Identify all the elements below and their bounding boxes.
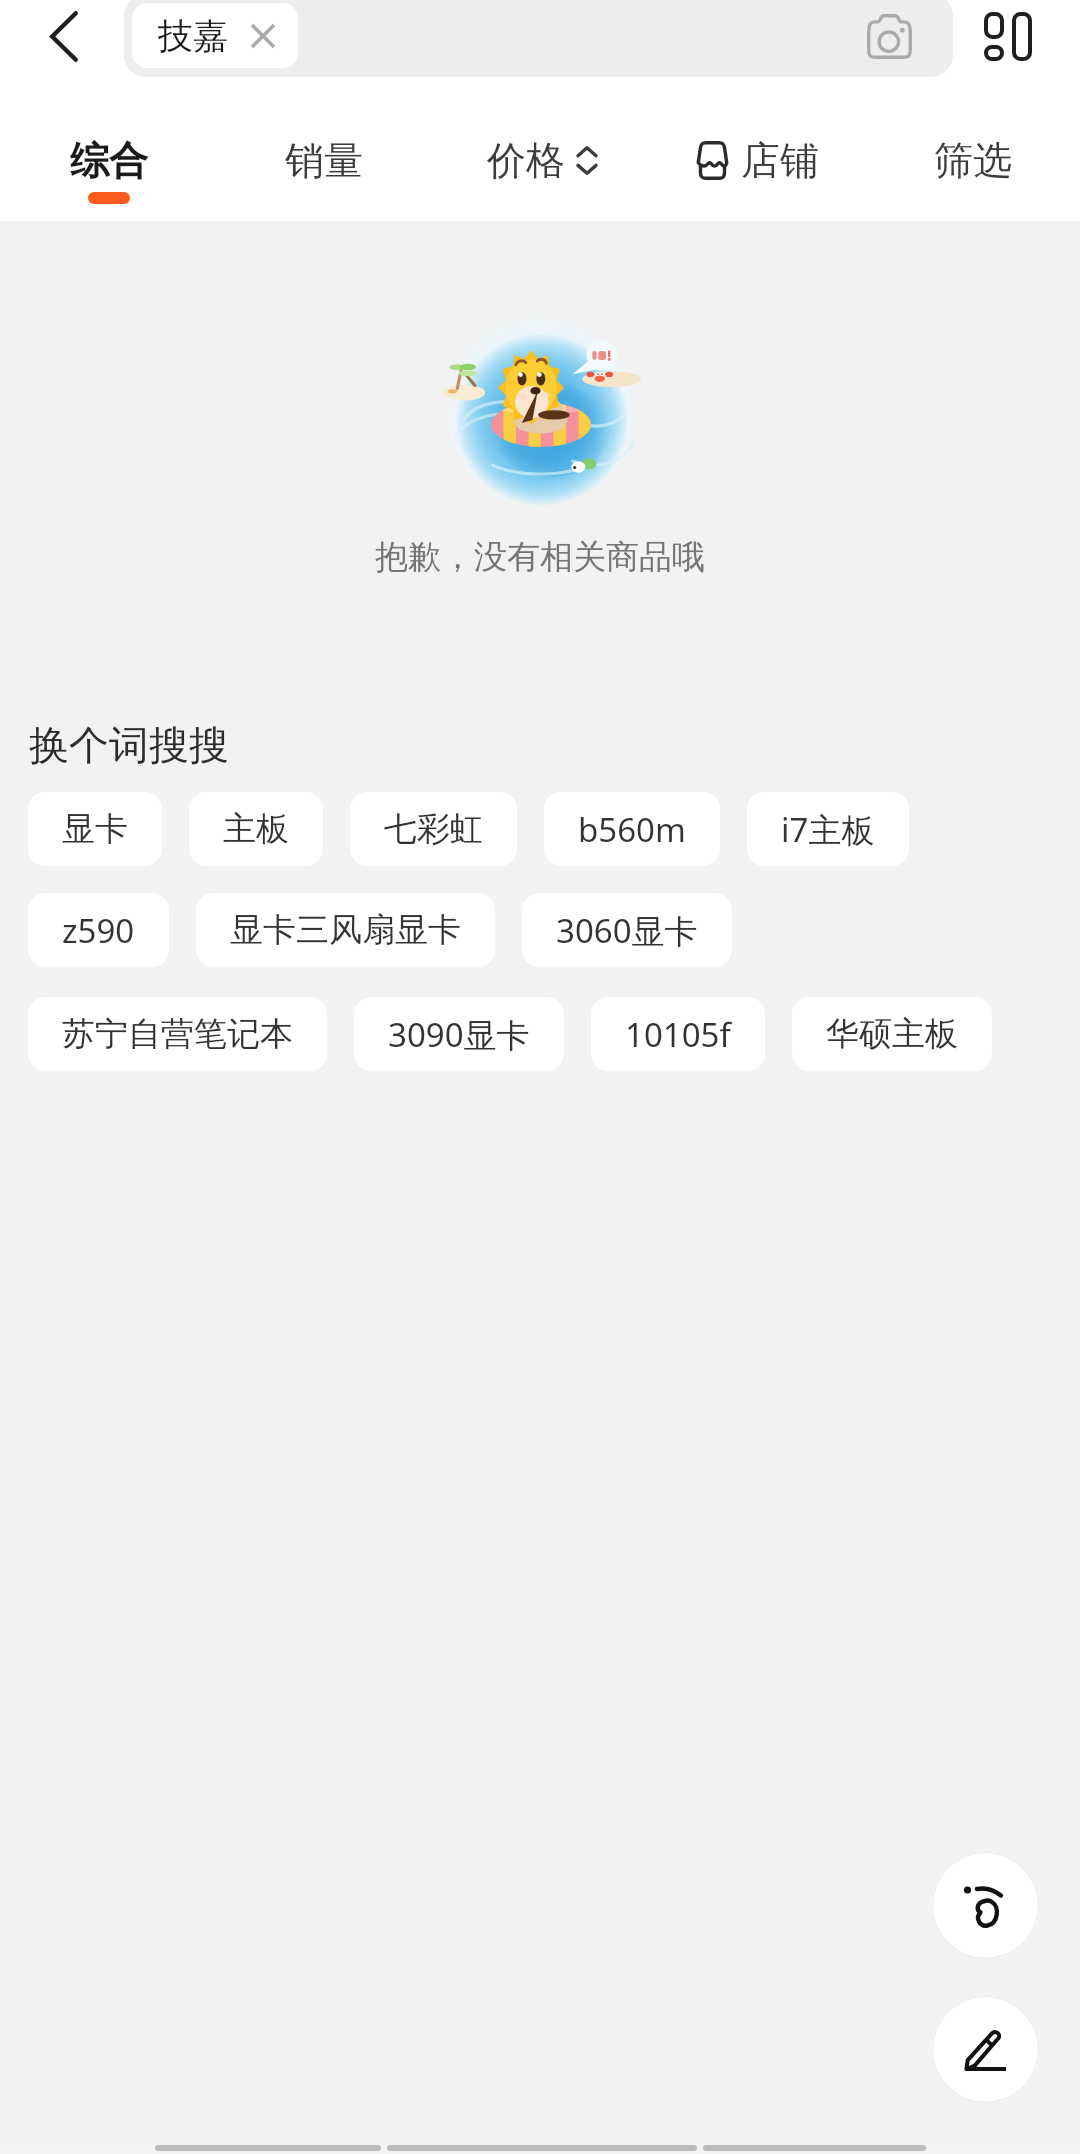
button[interactable]: 筛选: [910, 114, 1036, 207]
staticText: 苏宁自营笔记本: [62, 1013, 293, 1055]
button[interactable]: 10105f: [591, 997, 765, 1071]
button[interactable]: z590: [28, 893, 169, 967]
button[interactable]: 显卡: [28, 792, 162, 866]
button[interactable]: 价格: [463, 114, 622, 207]
staticText: z590: [62, 908, 135, 953]
staticText: i7主板: [781, 807, 875, 852]
staticText: 销量: [285, 136, 363, 185]
button[interactable]: b560m: [544, 792, 720, 866]
staticText: 换个词搜搜: [29, 720, 229, 770]
button[interactable]: 显卡三风扇显卡: [196, 893, 495, 967]
button[interactable]: 七彩虹: [350, 792, 517, 866]
button[interactable]: 技嘉: [132, 3, 298, 68]
button[interactable]: 店铺: [670, 114, 843, 207]
staticText: 3090显卡: [388, 1012, 530, 1057]
button[interactable]: 3060显卡: [522, 893, 732, 967]
button[interactable]: Customer service: [932, 1852, 1039, 1959]
button[interactable]: Back: [20, 0, 108, 74]
staticText: 价格: [487, 136, 565, 185]
staticText: b560m: [578, 807, 686, 852]
button[interactable]: 销量: [261, 114, 387, 207]
staticText: 华硕主板: [826, 1013, 958, 1055]
button[interactable]: 综合: [46, 114, 172, 226]
button[interactable]: 技嘉: [124, 0, 953, 77]
staticText: 筛选: [934, 136, 1012, 185]
staticText: 显卡: [62, 808, 128, 850]
button[interactable]: 苏宁自营笔记本: [28, 997, 327, 1071]
button[interactable]: 华硕主板: [792, 997, 992, 1071]
button[interactable]: Write a review: [932, 1996, 1039, 2103]
staticText: 3060显卡: [556, 908, 698, 953]
button[interactable]: 主板: [189, 792, 323, 866]
staticText: 10105f: [625, 1012, 731, 1057]
staticText: 主板: [223, 808, 289, 850]
staticText: 店铺: [741, 136, 819, 185]
staticText: 综合: [70, 136, 148, 185]
staticText: 抱歉，没有相关商品哦: [0, 536, 1080, 578]
button[interactable]: i7主板: [747, 792, 909, 866]
staticText: 技嘉: [158, 14, 228, 58]
button[interactable]: Switch layout: [961, 0, 1055, 78]
button[interactable]: Camera search: [860, 7, 918, 65]
button[interactable]: 3090显卡: [354, 997, 564, 1071]
staticText: 显卡三风扇显卡: [230, 909, 461, 951]
staticText: 七彩虹: [384, 808, 483, 850]
